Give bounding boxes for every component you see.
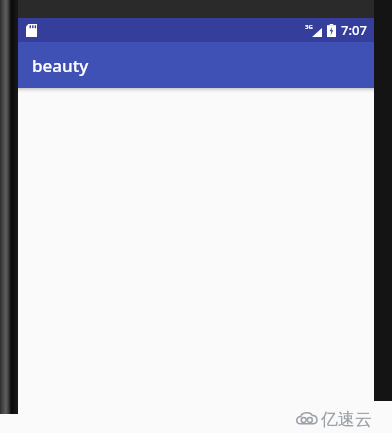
staticText: 3G bbox=[305, 23, 313, 31]
staticText: 7:07 bbox=[341, 21, 367, 39]
staticText: 亿速云 bbox=[321, 409, 372, 430]
staticText: beauty bbox=[32, 54, 89, 77]
button[interactable]: beauty bbox=[18, 42, 374, 88]
